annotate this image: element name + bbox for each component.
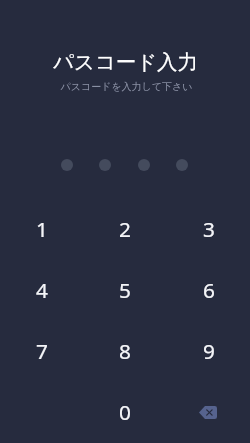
button[interactable]: 0 [84,383,166,441]
button[interactable]: 4 [1,261,83,319]
staticText: パスコードを入力して下さい [60,80,193,93]
staticText: 1 [36,215,48,243]
staticText: 8 [119,337,131,365]
button[interactable]: 6 [168,261,250,319]
staticText: 9 [203,337,215,365]
staticText: 2 [119,215,131,243]
staticText: 3 [203,215,215,243]
staticText: 0 [119,398,131,426]
button[interactable]: 1 [1,200,83,258]
staticText: パスコード入力 [53,49,198,75]
button[interactable]: 3 [168,200,250,258]
button[interactable]: 2 [84,200,166,258]
button[interactable]: 9 [168,322,250,380]
button[interactable]: 7 [1,322,83,380]
staticText: 5 [119,276,131,304]
staticText: 7 [36,337,48,365]
staticText: 6 [203,276,215,304]
staticText: 4 [36,276,48,304]
button[interactable]: 5 [84,261,166,319]
button[interactable]: Backspace [167,383,249,441]
button[interactable]: 8 [84,322,166,380]
